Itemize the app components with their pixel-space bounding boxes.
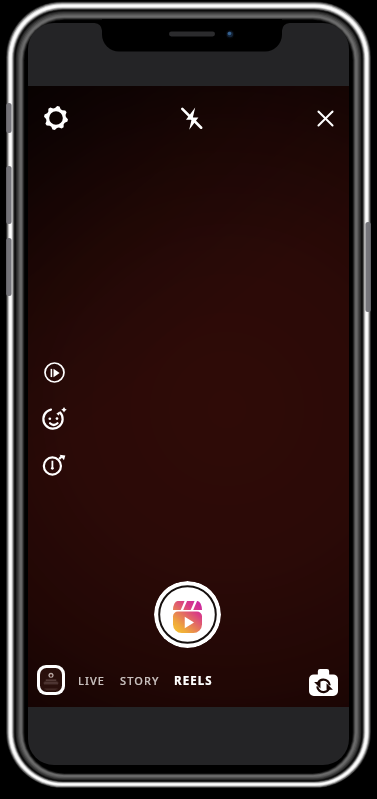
button[interactable]: LIVE <box>71 669 113 691</box>
button[interactable]: Flash off <box>171 98 211 138</box>
button[interactable]: Switch camera <box>307 666 339 698</box>
button[interactable]: STORY <box>113 669 167 691</box>
button[interactable]: Capture reel <box>154 581 221 648</box>
button[interactable]: Speed <box>38 356 70 388</box>
button[interactable]: Timer <box>36 450 68 482</box>
button[interactable]: Gallery <box>40 668 62 692</box>
button[interactable]: Settings <box>36 98 76 138</box>
button[interactable]: REELS <box>167 669 220 691</box>
button[interactable]: Effects <box>37 403 69 435</box>
button[interactable]: Close <box>305 98 345 138</box>
